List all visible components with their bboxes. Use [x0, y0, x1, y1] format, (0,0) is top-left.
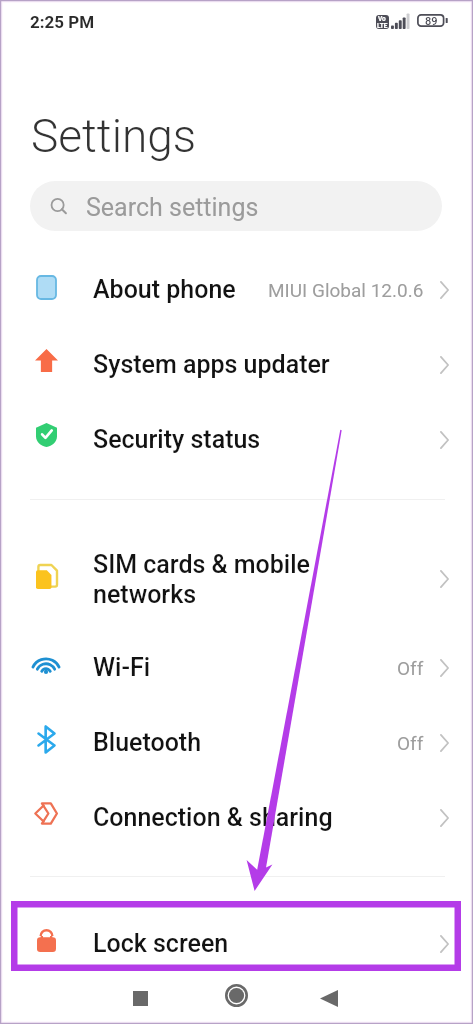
button[interactable]: Lock screen: [0, 904, 473, 979]
staticText: About phone: [93, 275, 268, 304]
button[interactable]: About phone: [0, 250, 473, 325]
button[interactable]: Home: [214, 973, 258, 1017]
staticText: System apps updater: [93, 350, 440, 379]
staticText: SIM cards & mobile networks: [93, 550, 440, 609]
staticText: Vo: [378, 15, 386, 23]
staticText: Settings: [31, 109, 197, 163]
button[interactable]: Recents: [118, 976, 162, 1020]
staticText: Connection & sharing: [93, 803, 440, 832]
button[interactable]: Security status: [0, 400, 473, 475]
staticText: Bluetooth: [93, 728, 397, 757]
staticText: Search settings: [86, 193, 259, 222]
button[interactable]: Bluetooth: [0, 703, 473, 778]
staticText: MIUI Global 12.0.6: [268, 279, 424, 301]
button[interactable]: Search settings: [30, 181, 442, 231]
staticText: 2:25 PM: [30, 12, 95, 32]
staticText: LTE: [377, 22, 388, 30]
staticText: Security status: [93, 425, 440, 454]
button[interactable]: Wi-Fi: [0, 628, 473, 703]
staticText: Wi-Fi: [93, 653, 397, 682]
staticText: Lock screen: [93, 929, 440, 958]
button[interactable]: Connection & sharing: [0, 778, 473, 853]
button[interactable]: Back: [307, 976, 351, 1020]
button[interactable]: SIM cards & mobile networks: [0, 526, 473, 628]
staticText: Off: [397, 732, 424, 754]
button[interactable]: System apps updater: [0, 325, 473, 400]
staticText: Off: [397, 657, 424, 679]
staticText: 89: [425, 15, 438, 28]
